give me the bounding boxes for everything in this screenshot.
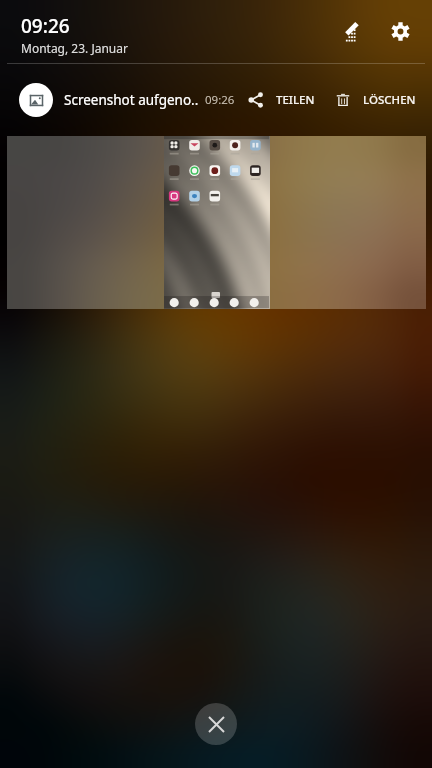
button[interactable] [7, 136, 425, 308]
staticText: LÖSCHEN [363, 92, 416, 108]
staticText: Montag, 23. Januar [21, 40, 128, 56]
staticText: 09:26 [21, 13, 70, 39]
button[interactable]: Schliessen [195, 703, 237, 745]
staticText: Screenshot aufgeno.. [64, 91, 199, 109]
button[interactable]: Bearbeiten [332, 10, 372, 50]
button[interactable]: Screenshot aufgeno.. [0, 64, 432, 136]
button[interactable]: Löschen [335, 76, 416, 124]
button[interactable]: Einstellungen [380, 11, 420, 51]
staticText: 09:26 [205, 92, 235, 108]
button[interactable]: Teilen [248, 76, 315, 124]
staticText: TEILEN [276, 92, 315, 108]
